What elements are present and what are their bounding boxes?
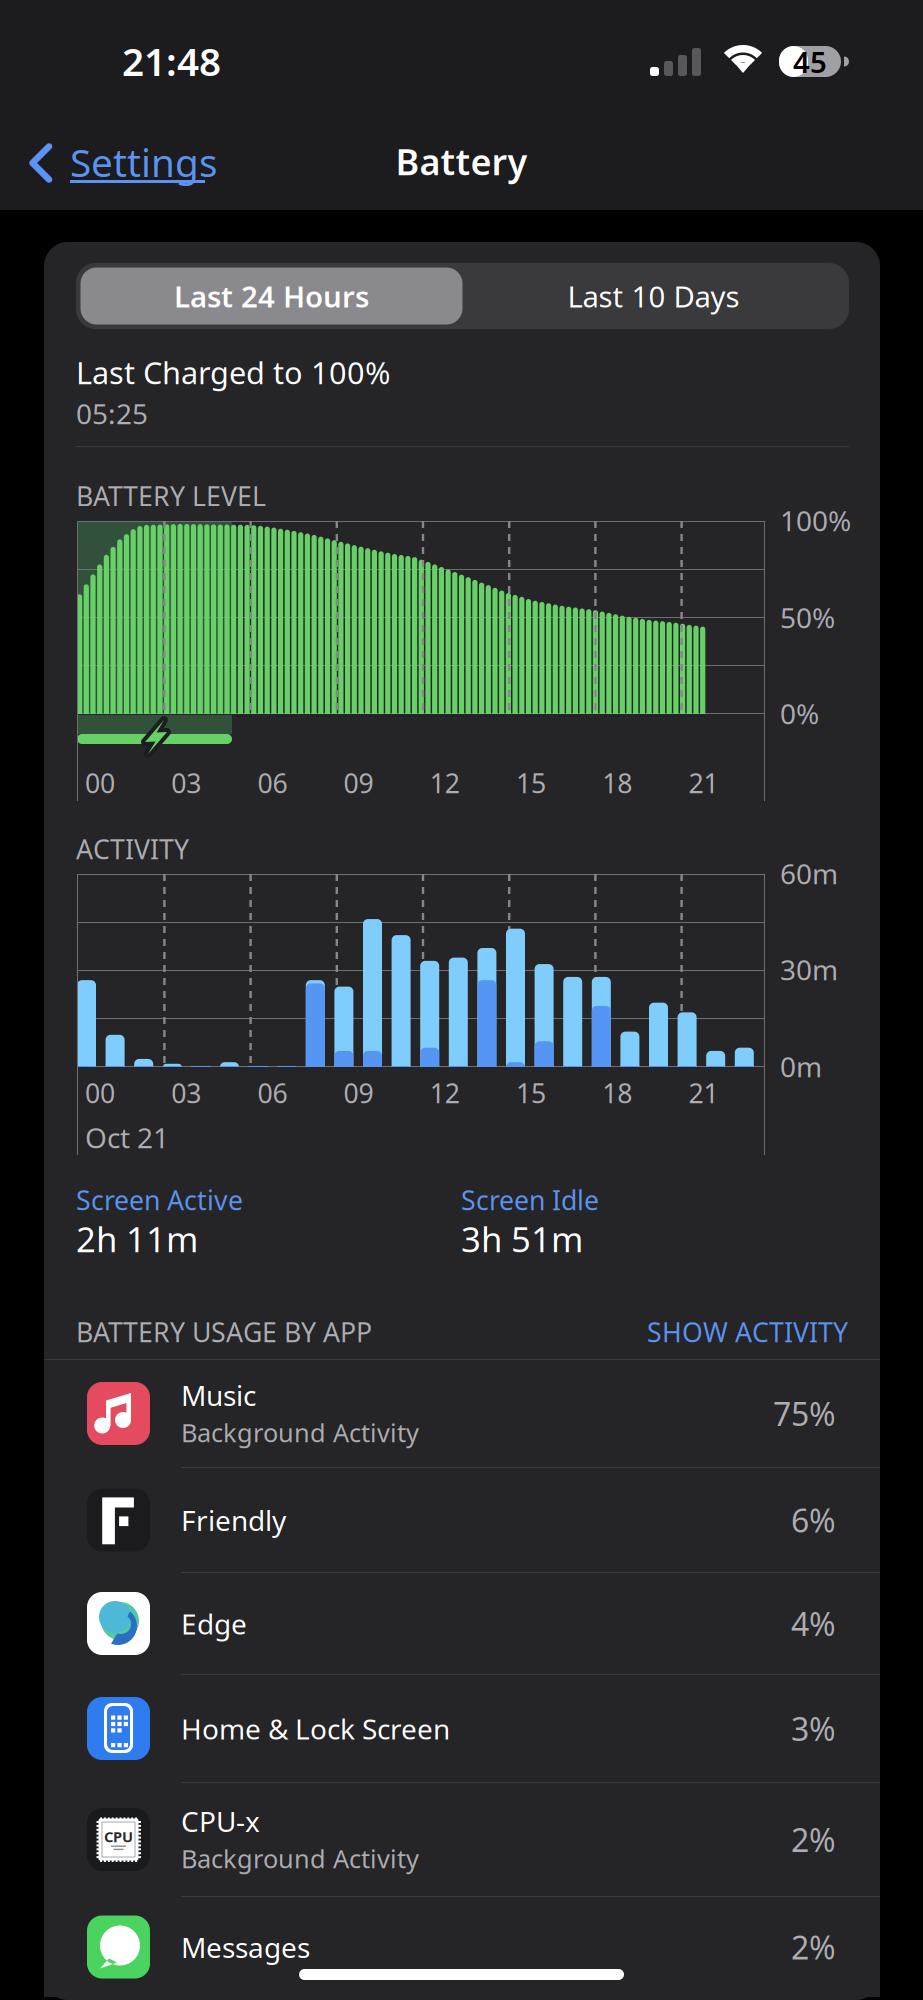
staticText: 15 bbox=[516, 1075, 546, 1111]
button[interactable]: Home & Lock Screen bbox=[44, 1675, 880, 1782]
staticText: 50% bbox=[780, 599, 835, 636]
staticText: Oct 21 bbox=[85, 1119, 169, 1156]
staticText: ACTIVITY bbox=[76, 831, 189, 867]
button[interactable]: Music bbox=[44, 1360, 880, 1467]
staticText: Messages bbox=[181, 1928, 310, 1966]
button[interactable]: Settings bbox=[18, 134, 226, 196]
staticText: 75% bbox=[773, 1392, 836, 1435]
staticText: 06 bbox=[257, 1075, 287, 1111]
staticText: 18 bbox=[602, 1075, 632, 1111]
staticText: 0% bbox=[780, 695, 819, 732]
staticText: 21 bbox=[688, 1075, 718, 1111]
staticText: 05:25 bbox=[76, 395, 148, 432]
staticText: 100% bbox=[780, 502, 851, 539]
button[interactable]: Edge bbox=[44, 1573, 880, 1674]
staticText: Last Charged to 100% bbox=[76, 352, 390, 393]
staticText: 12 bbox=[430, 1075, 460, 1111]
staticText: 09 bbox=[344, 1075, 374, 1111]
staticText: 12 bbox=[430, 765, 460, 801]
button[interactable]: Friendly bbox=[44, 1468, 880, 1572]
staticText: 21:48 bbox=[122, 35, 221, 87]
staticText: Music bbox=[181, 1376, 256, 1414]
staticText: Edge bbox=[181, 1605, 247, 1642]
staticText: BATTERY USAGE BY APP bbox=[76, 1314, 372, 1350]
staticText: Home & Lock Screen bbox=[181, 1710, 450, 1747]
staticText: 30m bbox=[780, 951, 838, 988]
staticText: 06 bbox=[257, 765, 287, 801]
staticText: 03 bbox=[171, 1075, 201, 1111]
button[interactable]: Last 24 Hours bbox=[80, 267, 462, 324]
staticText: 6% bbox=[791, 1499, 836, 1541]
staticText: 03 bbox=[171, 765, 201, 801]
button[interactable]: Messages bbox=[44, 1897, 880, 1997]
staticText: Background Activity bbox=[181, 1415, 419, 1449]
staticText: 00 bbox=[85, 765, 115, 801]
staticText: 2% bbox=[791, 1818, 836, 1861]
staticText: 60m bbox=[780, 855, 838, 892]
staticText: SHOW ACTIVITY bbox=[647, 1314, 848, 1350]
staticText: 4% bbox=[791, 1602, 836, 1645]
staticText: Screen Active bbox=[76, 1182, 243, 1218]
staticText: 21 bbox=[688, 765, 718, 801]
staticText: 2h 11m bbox=[76, 1216, 198, 1262]
staticText: Settings bbox=[70, 136, 218, 188]
staticText: CPU-x bbox=[181, 1802, 260, 1840]
staticText: 18 bbox=[602, 765, 632, 801]
staticText: BATTERY LEVEL bbox=[76, 478, 266, 514]
staticText: 0m bbox=[780, 1048, 822, 1085]
staticText: 3h 51m bbox=[461, 1216, 583, 1262]
staticText: 00 bbox=[85, 1075, 115, 1111]
staticText: Screen Idle bbox=[461, 1182, 599, 1218]
staticText: 3% bbox=[791, 1707, 836, 1750]
staticText: Battery bbox=[395, 137, 527, 185]
staticText: Last 10 Days bbox=[567, 276, 739, 315]
staticText: CPU bbox=[104, 1827, 133, 1846]
staticText: 2% bbox=[791, 1926, 836, 1968]
staticText: 45 bbox=[793, 42, 827, 81]
button[interactable]: CPU bbox=[44, 1783, 880, 1896]
staticText: Background Activity bbox=[181, 1841, 419, 1875]
staticText: 15 bbox=[516, 765, 546, 801]
staticText: 09 bbox=[344, 765, 374, 801]
button[interactable]: SHOW ACTIVITY bbox=[44, 1314, 848, 1350]
button[interactable]: Last 10 Days bbox=[462, 267, 844, 324]
staticText: Friendly bbox=[181, 1501, 286, 1539]
staticText: Last 24 Hours bbox=[174, 276, 369, 315]
